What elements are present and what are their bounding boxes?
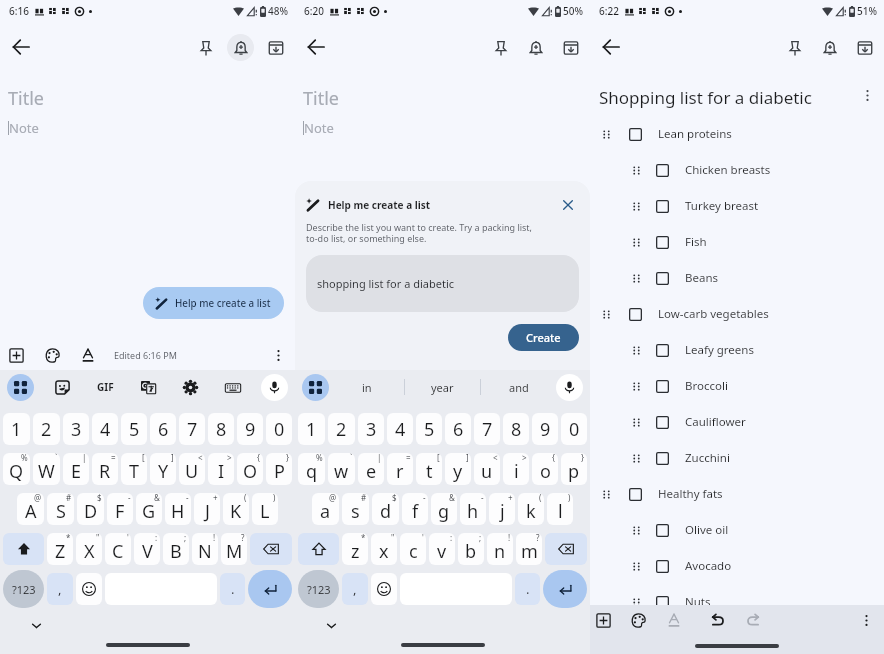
button[interactable]: Pin note [777,30,812,65]
button[interactable]: GIF [91,373,119,401]
button[interactable]: Turkey breast [632,188,884,224]
button[interactable]: 6 [445,413,471,445]
button[interactable]: Emoji [76,573,102,605]
button[interactable]: I [208,453,234,485]
button[interactable]: Back [297,28,335,66]
button[interactable]: Backspace [250,533,292,565]
button[interactable]: Lean proteins [602,116,884,152]
button[interactable]: Y [150,453,176,485]
button[interactable]: Broccoli [632,368,884,404]
button[interactable]: 8 [208,413,234,445]
button[interactable]: , [342,573,368,605]
button[interactable]: Reminder [812,30,847,65]
button[interactable]: Z [47,533,73,565]
button[interactable]: Help me create a list [143,287,284,319]
button[interactable]: w [328,453,355,485]
button[interactable]: 5 [416,413,442,445]
button[interactable]: Undo [705,607,731,633]
button[interactable]: 1 [3,413,30,445]
button[interactable]: Keyboard apps [7,374,34,401]
button[interactable]: Reminder [518,30,553,65]
button[interactable]: Stickers [49,374,76,401]
button[interactable]: 9 [237,413,263,445]
button[interactable]: B [163,533,189,565]
button[interactable]: H [165,493,191,525]
button[interactable]: More options [855,83,879,106]
button[interactable]: j [489,493,515,525]
button[interactable]: Voice input [261,374,288,401]
button[interactable]: C [105,533,131,565]
button[interactable]: Background options [625,607,651,633]
button[interactable]: m [516,533,542,565]
button[interactable]: a [312,493,339,525]
button[interactable]: v [429,533,455,565]
button[interactable]: Pin note [188,30,223,65]
button[interactable]: Chicken breasts [632,152,884,188]
button[interactable]: i [503,453,529,485]
button[interactable]: c [400,533,426,565]
button[interactable]: Settings [177,374,204,401]
button[interactable]: 2 [328,413,355,445]
button[interactable]: Olive oil [632,512,884,548]
button[interactable]: Formatting [661,607,687,633]
button[interactable]: Back [592,28,630,66]
button[interactable]: Beans [632,260,884,296]
button[interactable]: Cauliflower [632,404,884,440]
button[interactable]: Archive [258,30,293,65]
button[interactable]: 0 [561,413,587,445]
button[interactable]: Leafy greens [632,332,884,368]
button[interactable]: d [372,493,399,525]
button[interactable]: S [47,493,74,525]
button[interactable]: Formatting [75,342,101,368]
button[interactable]: Backspace [545,533,587,565]
button[interactable]: Archive [847,30,882,65]
button[interactable]: o [532,453,558,485]
button[interactable]: D [77,493,104,525]
button[interactable]: t [416,453,442,485]
button[interactable]: Emoji [371,573,397,605]
button[interactable]: , [47,573,73,605]
button[interactable]: G [136,493,162,525]
button[interactable]: Translate [135,374,162,401]
button[interactable]: x [371,533,397,565]
button[interactable]: A [17,493,44,525]
button[interactable]: ?123 [3,570,44,608]
button[interactable]: 6 [150,413,176,445]
button[interactable]: 9 [532,413,558,445]
button[interactable]: Voice input [556,374,583,401]
button[interactable]: year [405,370,480,404]
button[interactable]: R [92,453,118,485]
button[interactable]: X [76,533,102,565]
button[interactable]: Enter [248,570,292,608]
button[interactable]: 0 [266,413,292,445]
button[interactable]: U [179,453,205,485]
button[interactable]: h [460,493,486,525]
button[interactable]: 7 [179,413,205,445]
button[interactable]: T [121,453,147,485]
button[interactable]: Low-carb vegetables [602,296,884,332]
button[interactable]: N [192,533,218,565]
button[interactable]: 3 [63,413,89,445]
button[interactable]: n [487,533,513,565]
button[interactable]: Shift [298,533,339,565]
button[interactable]: J [194,493,220,525]
button[interactable]: W [33,453,60,485]
button[interactable]: M [221,533,247,565]
button[interactable]: Hide keyboard [323,617,339,633]
button[interactable]: p [561,453,587,485]
button[interactable]: Back [2,28,40,66]
button[interactable]: 3 [358,413,384,445]
button[interactable]: Zucchini [632,440,884,476]
button[interactable]: k [518,493,544,525]
button[interactable]: 7 [474,413,500,445]
button[interactable]: Keyboard layouts [219,374,246,401]
button[interactable]: O [237,453,263,485]
button[interactable]: f [402,493,428,525]
button[interactable]: Close [557,194,579,216]
button[interactable]: L [252,493,278,525]
button[interactable]: Add [3,342,29,368]
button[interactable]: Avocado [632,548,884,584]
button[interactable]: Hide keyboard [28,617,44,633]
button[interactable]: Add [590,607,616,633]
button[interactable]: Healthy fats [602,476,884,512]
